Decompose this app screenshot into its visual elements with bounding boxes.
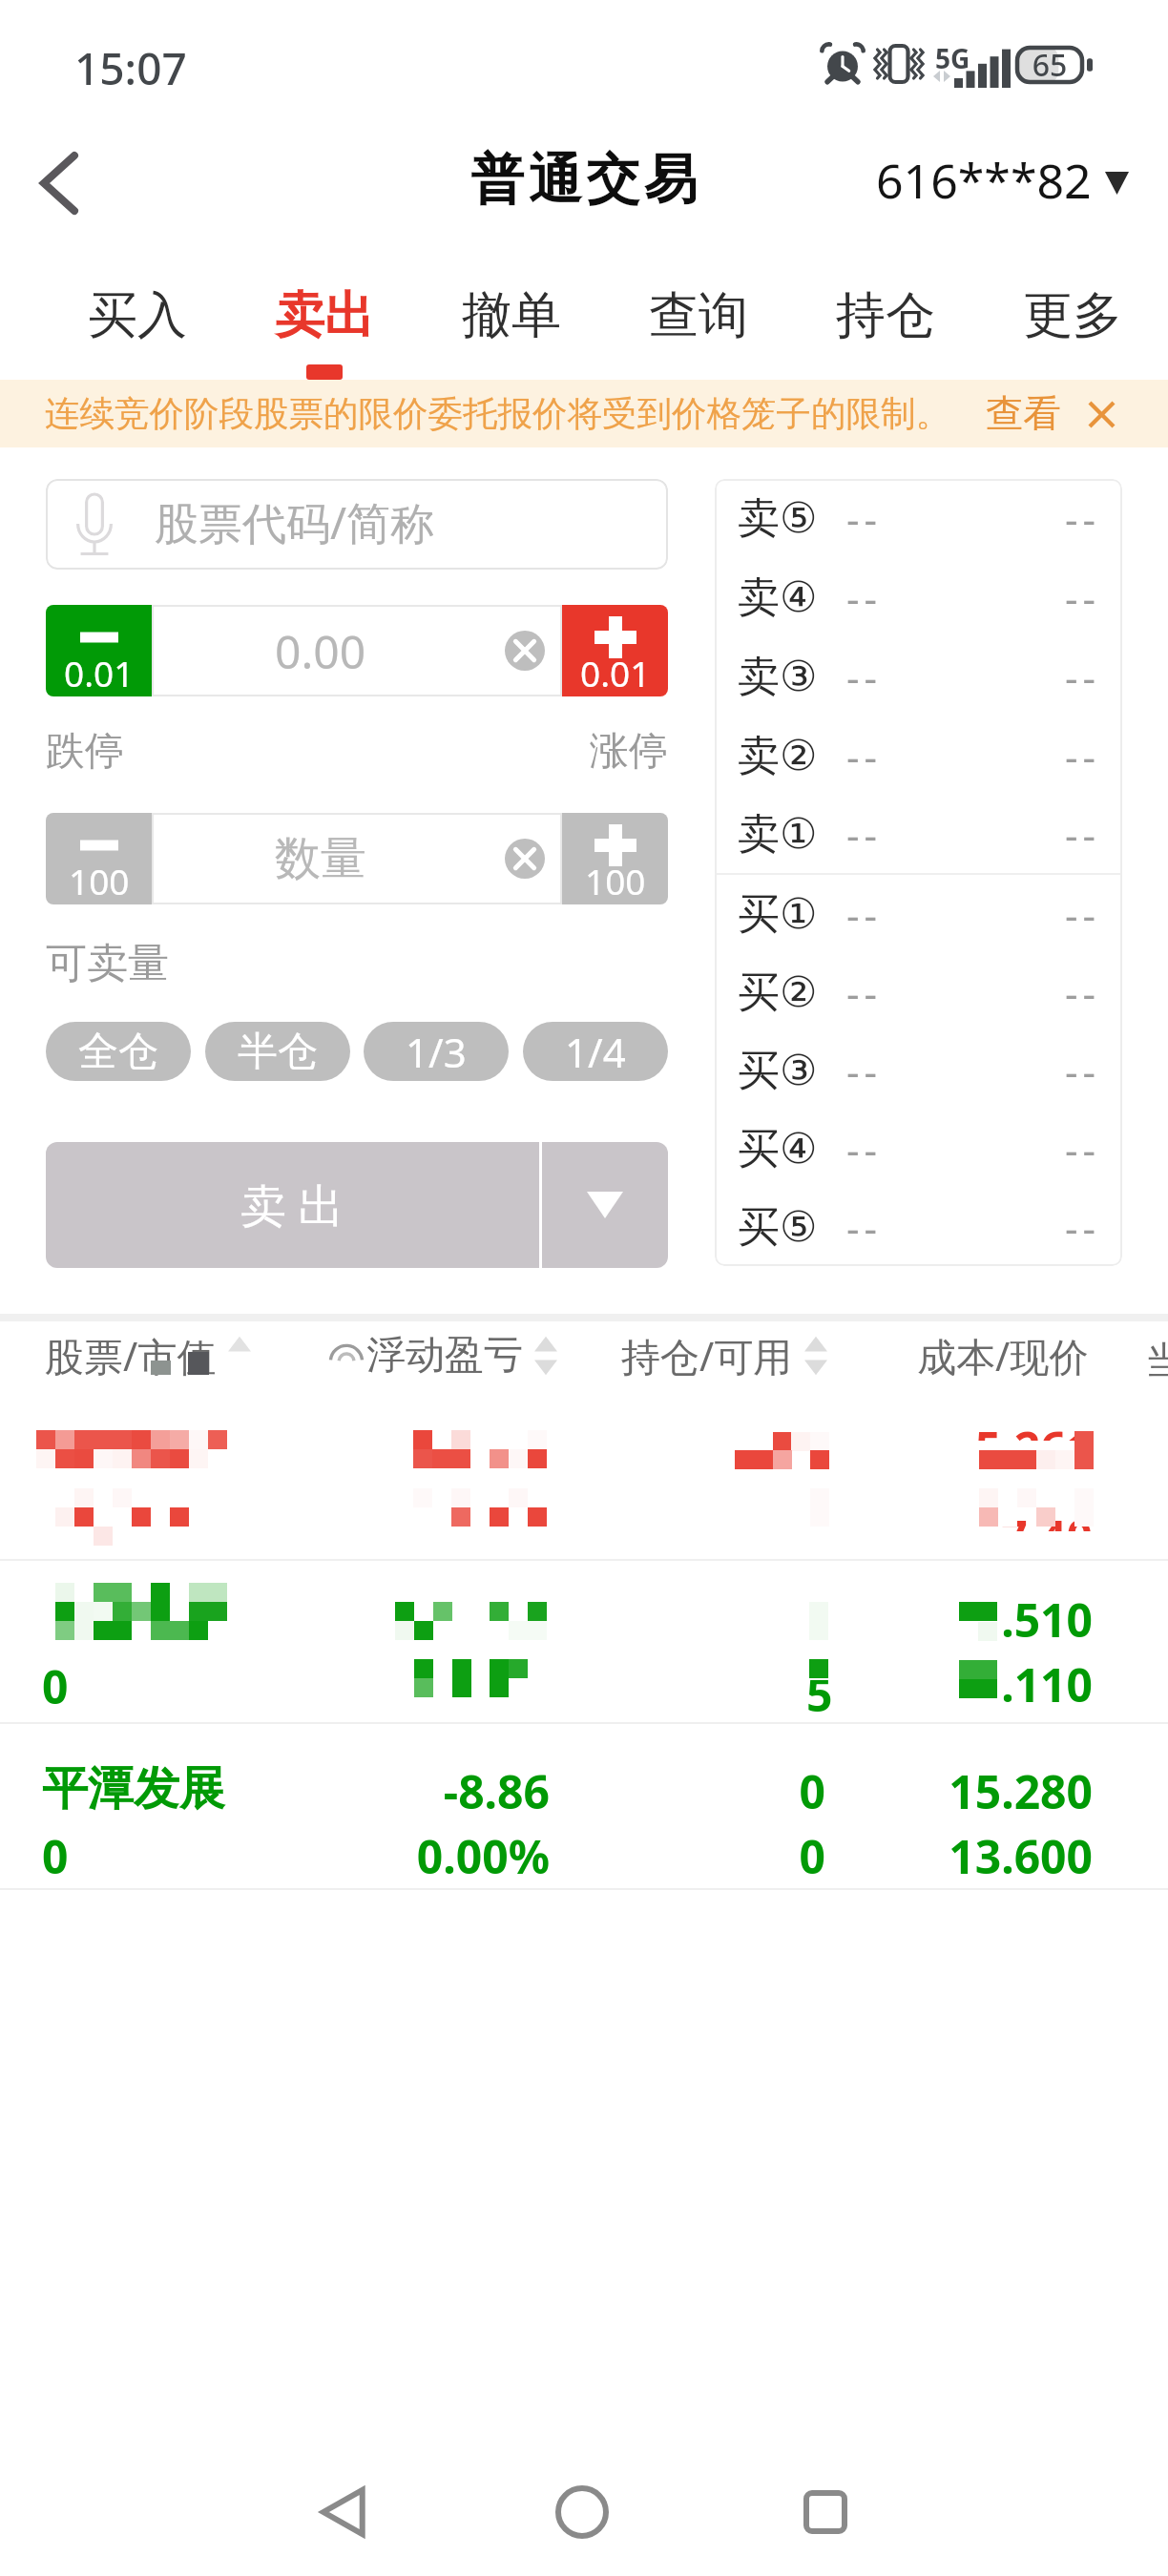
staticText: -- (846, 807, 883, 862)
button[interactable]: 股票代码/简称 (46, 479, 668, 570)
button[interactable]: 卖④ (715, 558, 1122, 637)
button[interactable]: 买① (715, 875, 1122, 953)
button[interactable]: 1/4 (523, 1022, 668, 1081)
staticText: 5 (806, 1663, 833, 1725)
button[interactable]: Increase (562, 605, 668, 696)
staticText: 买④ (738, 1123, 818, 1175)
staticText: 0 (42, 1655, 69, 1717)
button[interactable]: 买入 (44, 253, 231, 380)
button[interactable]: 持仓 (792, 253, 979, 380)
button[interactable]: Clear (505, 631, 545, 671)
staticText: 15:07 (74, 38, 187, 98)
button[interactable]: 查看 (986, 390, 1061, 438)
staticText: -- (1065, 807, 1101, 862)
button[interactable]: 买⑤ (715, 1188, 1122, 1266)
button[interactable]: 全仓 (46, 1022, 191, 1081)
button[interactable]: Back (228, 2448, 457, 2576)
button[interactable]: 616***82 (876, 148, 1129, 213)
button[interactable]: 半仓 (205, 1022, 350, 1081)
staticText: 股票/市值 (45, 1329, 217, 1382)
button[interactable]: 5.261 (0, 1398, 1168, 1559)
staticText: 100 (585, 857, 646, 904)
staticText: .510 (806, 1589, 1093, 1651)
button[interactable]: 股票/市值 (45, 1321, 251, 1390)
staticText: -- (846, 571, 883, 625)
button[interactable]: 卖出 (231, 253, 418, 380)
staticText: 查看 (986, 390, 1061, 438)
button[interactable]: 买③ (715, 1031, 1122, 1110)
staticText: 卖① (738, 808, 818, 861)
staticText: 撤单 (462, 284, 561, 347)
staticText: -- (1065, 729, 1101, 783)
staticText: 跌停 (46, 727, 124, 777)
staticText: -- (1065, 491, 1101, 546)
button[interactable]: 买④ (715, 1110, 1122, 1188)
staticText: 卖⑤ (738, 492, 818, 545)
button[interactable]: 1/3 (364, 1022, 509, 1081)
button[interactable]: Increase (562, 813, 668, 904)
staticText: 卖④ (738, 571, 818, 624)
staticText: 65 (1015, 44, 1084, 82)
staticText: 5.261 (806, 1417, 1093, 1479)
staticText: 0 (539, 1825, 825, 1887)
staticText: 100 (69, 857, 130, 904)
staticText: -- (846, 729, 883, 783)
staticText: 15.280 (806, 1760, 1093, 1822)
button[interactable]: 查询 (605, 253, 792, 380)
staticText: 数量 (275, 830, 366, 887)
staticText: -- (846, 887, 883, 942)
button[interactable]: Recent apps (711, 2448, 940, 2576)
staticText: -- (846, 1044, 883, 1098)
staticText: 7.40 (806, 1506, 1093, 1568)
button[interactable]: Close notice (1076, 389, 1126, 439)
staticText: -- (846, 491, 883, 546)
button[interactable]: 成本/现价 (917, 1321, 1089, 1390)
staticText: .110 (806, 1653, 1093, 1715)
staticText: 买① (738, 888, 818, 941)
button[interactable]: 卖① (715, 795, 1122, 873)
staticText: 卖② (738, 730, 818, 782)
staticText: 0 (42, 1825, 69, 1887)
staticText: -- (1065, 1122, 1101, 1176)
staticText: 当 (1145, 1337, 1168, 1386)
staticText: 浮动盈亏 (366, 1331, 523, 1381)
button[interactable]: 更多 (979, 253, 1166, 380)
button[interactable]: Decrease (46, 605, 152, 696)
button[interactable]: 浮动盈亏 (366, 1321, 557, 1390)
button[interactable]: 卖 出 (46, 1142, 539, 1268)
button[interactable]: 卖② (715, 717, 1122, 795)
button[interactable]: Home (468, 2448, 697, 2576)
staticText: 卖③ (738, 651, 818, 703)
staticText: 持仓 (836, 284, 935, 347)
button[interactable]: 平潭发展 (0, 1724, 1168, 1888)
staticText: -- (1065, 1044, 1101, 1098)
staticText: 1/4 (565, 1025, 626, 1079)
staticText: 616***82 (876, 148, 1092, 213)
button[interactable]: 0.00 (152, 605, 562, 696)
button[interactable]: 卖⑤ (715, 479, 1122, 558)
staticText: 买③ (738, 1045, 818, 1097)
staticText: 5G (935, 40, 970, 76)
button[interactable]: 持仓/可用 (621, 1321, 827, 1390)
staticText: 普通交易 (469, 146, 699, 214)
staticText: -- (846, 1200, 883, 1255)
button[interactable]: More sell options (542, 1142, 668, 1268)
staticText: 0.01 (64, 649, 135, 696)
staticText: 0.00% (263, 1825, 550, 1887)
staticText: -- (846, 1122, 883, 1176)
button[interactable]: Decrease (46, 813, 152, 904)
button[interactable]: 买② (715, 953, 1122, 1031)
button[interactable]: Clear (505, 839, 545, 879)
staticText: 卖 出 (240, 1174, 344, 1236)
staticText: 13.600 (806, 1825, 1093, 1887)
button[interactable]: 数量 (152, 813, 562, 904)
staticText: 成本/现价 (917, 1329, 1089, 1382)
staticText: 连续竞价阶段股票的限价委托报价将受到价格笼子的限制。 (45, 392, 950, 436)
staticText: -8.86 (263, 1760, 550, 1822)
staticText: 持仓/可用 (621, 1329, 793, 1382)
staticText: 0.00 (275, 620, 366, 682)
button[interactable]: Back (0, 124, 118, 253)
button[interactable] (0, 1561, 1168, 1722)
button[interactable]: 撤单 (418, 253, 605, 380)
button[interactable]: 卖③ (715, 637, 1122, 717)
